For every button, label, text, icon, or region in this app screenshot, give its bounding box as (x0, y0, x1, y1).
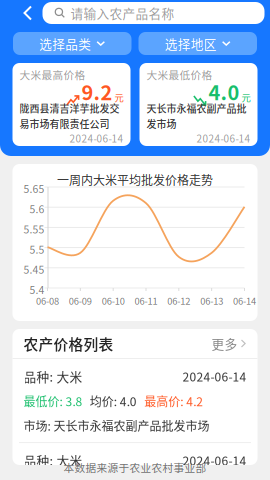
staticText: 5.65 (23, 181, 44, 196)
staticText: 06-13 (200, 294, 223, 307)
staticText: 大米最高价格 (19, 67, 85, 82)
staticText: 最高价: 4.2 (144, 392, 203, 410)
staticText: 06-11 (134, 294, 157, 307)
staticText: 2024-06-14 (69, 131, 123, 145)
staticText: 品种: 大米 (23, 451, 82, 469)
staticText: 一周内大米平均批发价格走势 (57, 171, 213, 188)
staticText: 最低价: 3.8 (23, 392, 82, 410)
staticText: 5.45 (23, 262, 44, 277)
staticText: 元 (114, 90, 123, 104)
staticText: 陇西县清吉洋芋批发交易市场有限责任公司 (19, 101, 119, 131)
staticText: 06-08 (36, 294, 59, 307)
button[interactable]: 农产价格列表 (12, 329, 257, 358)
button[interactable]: 品种: 大米 (12, 359, 257, 442)
button[interactable]: 选择地区 (138, 32, 257, 55)
staticText: 2024-06-14 (182, 452, 246, 469)
staticText: 5.4 (29, 282, 44, 297)
button[interactable]: 选择品类 (13, 32, 131, 55)
staticText: 本数据来源于农业农村事业部 (63, 460, 206, 475)
staticText: 天长市永福农副产品批发市场 (146, 101, 246, 131)
staticText: 2024-06-14 (196, 131, 250, 145)
staticText: 品种: 大米 (23, 367, 82, 385)
staticText: 大米最低价格 (146, 67, 212, 82)
staticText: 06-09 (69, 294, 92, 307)
staticText: 4.0 (208, 77, 239, 106)
staticText: 元 (241, 90, 250, 104)
staticText: 5.5 (29, 242, 44, 257)
staticText: 选择品类 (39, 34, 91, 53)
staticText: 06-10 (102, 294, 125, 307)
staticText: 均价: 4.0 (90, 392, 137, 410)
button[interactable]: Back (13, 2, 42, 24)
button[interactable]: 品种: 大米 (12, 443, 257, 480)
staticText: 农产价格列表 (23, 333, 113, 354)
staticText: 06-14 (233, 294, 256, 307)
staticText: 9.2 (81, 77, 112, 106)
staticText: 选择地区 (165, 34, 217, 53)
staticText: 更多 (211, 334, 237, 353)
button[interactable]: 请输入农产品名称 (42, 2, 264, 24)
staticText: 市场: 天长市永福农副产品批发市场 (23, 417, 209, 434)
staticText: 2024-06-14 (182, 367, 246, 385)
staticText: 06-12 (167, 294, 190, 307)
staticText: 5.55 (23, 221, 44, 236)
staticText: 5.6 (29, 201, 44, 216)
staticText: 请输入农产品名称 (70, 4, 174, 22)
